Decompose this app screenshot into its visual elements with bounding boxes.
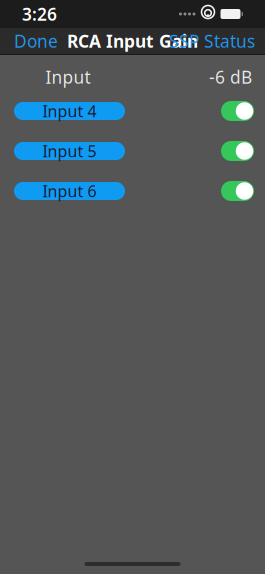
staticText: RCA Input Gain [67, 29, 198, 52]
button[interactable]: Input 4 enabled [221, 101, 254, 121]
staticText: Input [45, 65, 90, 88]
button[interactable]: Input 5 enabled [221, 141, 254, 161]
staticText: Input 6 [42, 180, 96, 202]
button[interactable]: Input 4 [14, 102, 125, 120]
button[interactable]: Input 5 [14, 142, 125, 160]
staticText: SSP Status [169, 29, 255, 52]
button[interactable]: Done [0, 28, 72, 54]
staticText: Done [14, 29, 58, 52]
button[interactable]: Input 6 enabled [221, 181, 254, 201]
button[interactable]: Input 6 [14, 182, 125, 200]
button[interactable]: SSP Status [159, 28, 265, 54]
staticText: 3:26 [22, 2, 57, 25]
staticText: Input 4 [42, 100, 96, 122]
staticText: -6 dB [209, 65, 252, 88]
staticText: Input 5 [42, 140, 96, 162]
